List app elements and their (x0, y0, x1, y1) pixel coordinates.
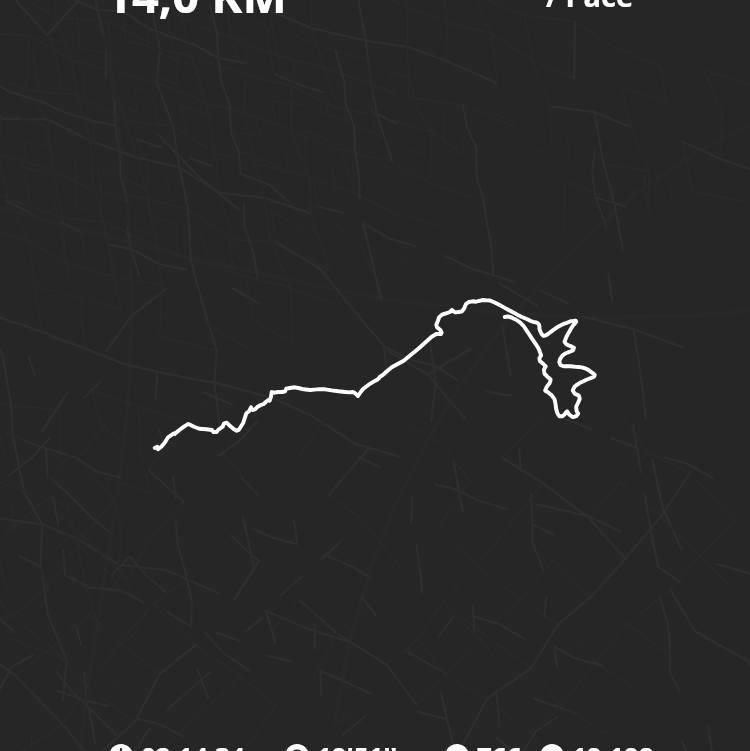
button[interactable]: Steps (540, 733, 654, 751)
staticText: 19'51'' (317, 739, 398, 751)
other: Steps (540, 744, 564, 751)
staticText: / Pace (546, 0, 634, 15)
other: Calories (445, 744, 469, 751)
button[interactable]: Average pace (285, 733, 398, 751)
button[interactable]: Duration (109, 733, 245, 751)
other: Average pace (285, 744, 309, 751)
staticText: 19.198 (572, 739, 654, 751)
other: Duration (109, 744, 133, 751)
staticText: 02:14:34 (141, 739, 245, 751)
button[interactable]: Calories (445, 733, 522, 751)
staticText: 14,0 KM (105, 0, 287, 27)
staticText: 766 (477, 739, 522, 751)
